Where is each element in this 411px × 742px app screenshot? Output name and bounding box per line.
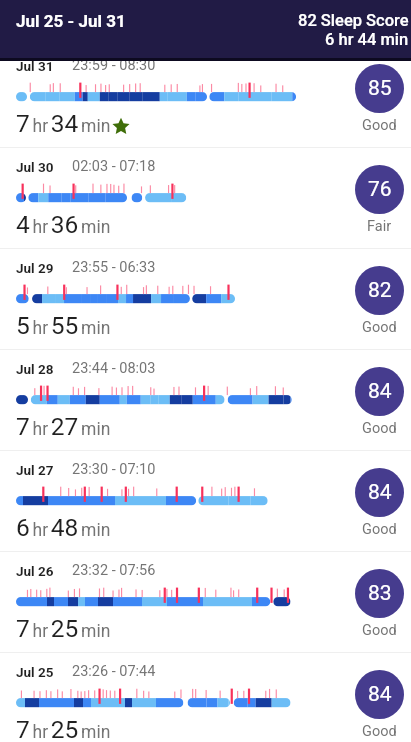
staticText: Jul 29 [16,260,54,276]
staticText: 6 hr 44 min [325,30,409,49]
staticText: Good [362,117,397,134]
staticText: 84 [368,379,392,404]
staticText: 84 [368,682,392,707]
staticText: Good [362,622,397,639]
staticText: 23:32 - 07:56 [72,562,156,579]
button[interactable]: Jul 27 [0,451,411,552]
staticText: 7 hr 25 min [16,715,111,742]
staticText: 02:03 - 07:18 [72,158,156,175]
staticText: 82 Sleep Score [298,11,409,30]
staticText: 5 hr 55 min [16,311,111,340]
staticText: 23:55 - 06:33 [72,259,156,276]
staticText: 84 [368,480,392,505]
staticText: Good [362,723,397,740]
staticText: 7 hr 27 min [16,412,111,441]
staticText: 23:30 - 07:10 [72,461,156,478]
button[interactable]: Jul 31 [0,47,411,148]
button[interactable]: Jul 29 [0,249,411,350]
staticText: Fair [367,218,392,235]
staticText: Jul 25 - Jul 31 [16,11,126,31]
staticText: 82 [368,278,392,303]
staticText: Jul 31 [16,58,54,74]
staticText: Jul 28 [16,361,54,377]
staticText: Jul 25 [16,664,54,680]
staticText: Jul 27 [16,462,54,478]
button[interactable]: Jul 26 [0,552,411,653]
staticText: 23:26 - 07:44 [72,663,156,680]
button[interactable]: Jul 28 [0,350,411,451]
staticText: 76 [368,177,392,202]
staticText: Jul 26 [16,563,54,579]
staticText: 23:44 - 08:03 [72,360,156,377]
button[interactable]: Jul 30 [0,148,411,249]
staticText: Good [362,319,397,336]
staticText: 23:59 - 08:30 [72,57,156,74]
staticText: Jul 30 [16,159,54,175]
staticText: 7 hr 34 min [16,109,111,138]
staticText: 7 hr 25 min [16,614,111,643]
staticText: 85 [368,76,392,101]
staticText: 83 [368,581,392,606]
staticText: 4 hr 36 min [16,210,111,239]
staticText: 6 hr 48 min [16,513,111,542]
staticText: Good [362,420,397,437]
staticText: Good [362,521,397,538]
button[interactable]: Jul 25 [0,653,411,742]
